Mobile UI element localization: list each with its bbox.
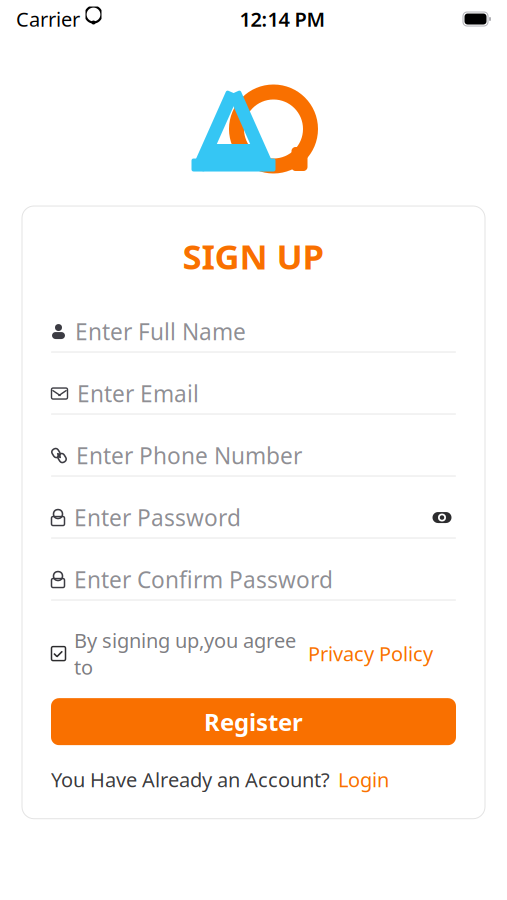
staticText: Carrier — [16, 6, 80, 32]
staticText: Enter Phone Number — [76, 440, 302, 471]
button[interactable]: Privacy Policy — [304, 640, 433, 667]
staticText: Privacy Policy — [308, 640, 433, 667]
staticText: Enter Password — [74, 502, 241, 533]
staticText: By signing up,you agree to — [74, 627, 296, 680]
staticText: Enter Email — [77, 378, 199, 409]
staticText: Enter Full Name — [75, 316, 246, 347]
staticText: Register — [204, 706, 303, 738]
staticText: You Have Already an Account? — [51, 766, 330, 793]
button[interactable]: By signing up,you agree to — [51, 627, 296, 680]
button[interactable]: Login — [330, 762, 389, 797]
staticText: Enter Confirm Password — [74, 564, 333, 595]
staticText: 12:14 PM — [239, 6, 325, 32]
button[interactable]: Show password — [428, 504, 456, 530]
button[interactable]: Register — [51, 698, 456, 745]
staticText: Login — [338, 766, 389, 793]
staticText: SIGN UP — [182, 233, 324, 279]
